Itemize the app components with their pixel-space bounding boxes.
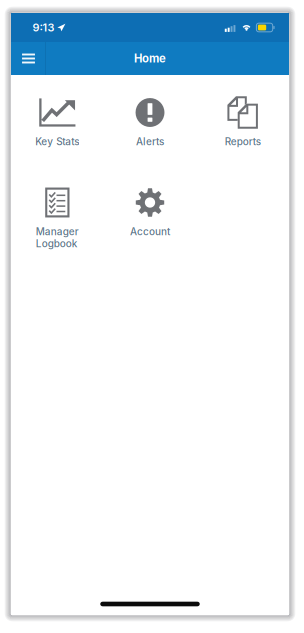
staticText: Account bbox=[130, 225, 170, 238]
button[interactable]: Reports bbox=[196, 97, 289, 187]
staticText: Key Stats bbox=[35, 135, 79, 148]
button[interactable]: Menu bbox=[11, 42, 46, 75]
button[interactable]: Alerts bbox=[104, 97, 196, 187]
button[interactable]: Key Stats bbox=[11, 97, 104, 187]
staticText: Reports bbox=[225, 135, 261, 148]
staticText: 9:13 bbox=[32, 21, 54, 34]
staticText: Home bbox=[134, 52, 166, 65]
staticText: Alerts bbox=[136, 135, 164, 148]
button[interactable]: Manager Logbook bbox=[11, 187, 104, 277]
staticText: Manager Logbook bbox=[36, 225, 79, 250]
button[interactable]: Account bbox=[104, 187, 196, 277]
